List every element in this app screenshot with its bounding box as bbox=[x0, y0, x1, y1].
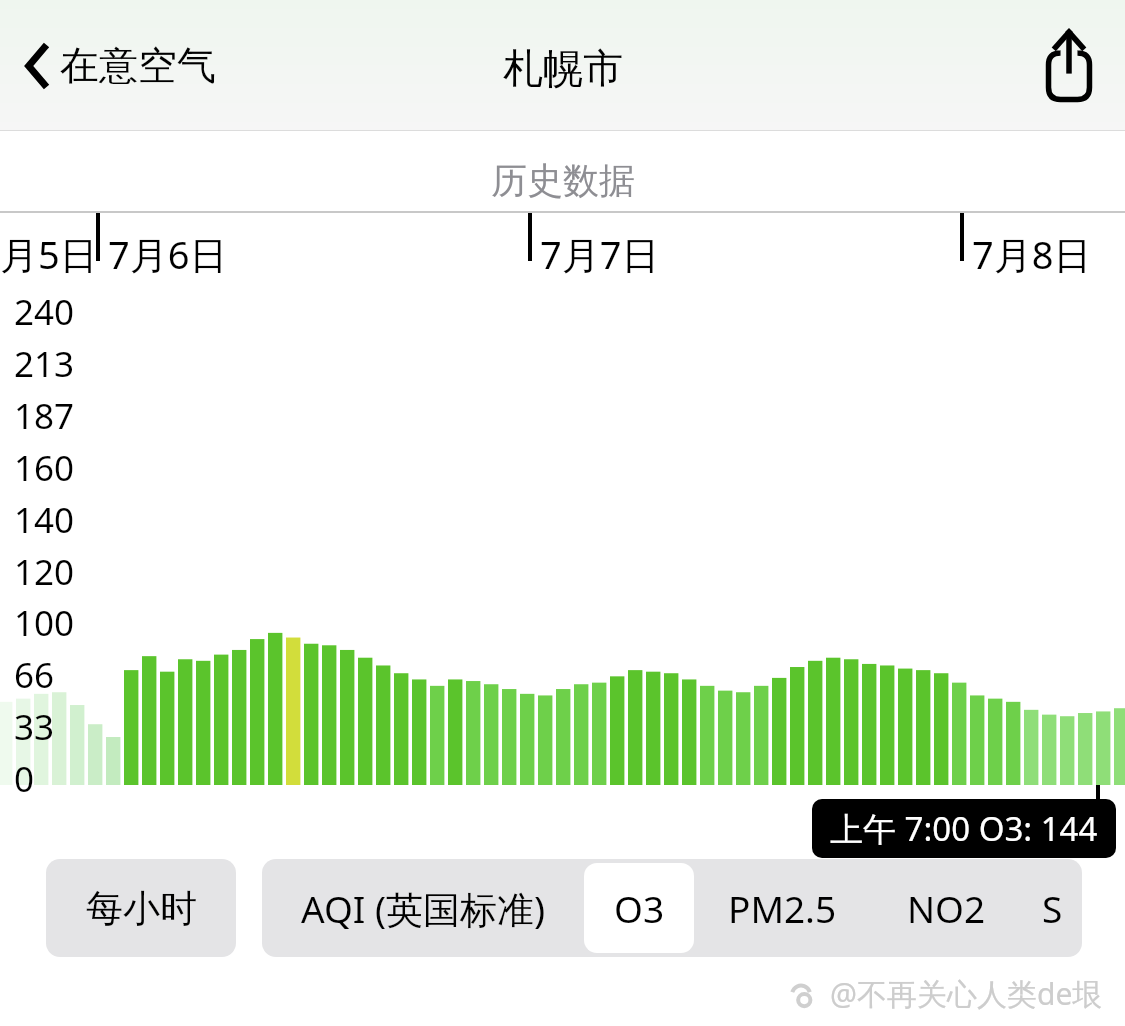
staticText: 240 bbox=[14, 288, 75, 336]
button[interactable]: O3 bbox=[584, 863, 694, 953]
staticText: 7月8日 bbox=[972, 228, 1092, 280]
staticText: PM2.5 bbox=[728, 883, 837, 933]
button[interactable]: 在意空气 bbox=[16, 35, 224, 96]
staticText: 140 bbox=[14, 496, 75, 544]
staticText: 7月6日 bbox=[108, 228, 228, 280]
staticText: 月5日 bbox=[0, 228, 98, 280]
button[interactable]: PM2.5 bbox=[694, 859, 870, 957]
staticText: 213 bbox=[14, 340, 75, 388]
staticText: 120 bbox=[14, 548, 75, 596]
staticText: 在意空气 bbox=[60, 41, 216, 90]
staticText: 160 bbox=[14, 444, 75, 492]
staticText: 上午 7:00 O3: 144 bbox=[830, 806, 1098, 851]
staticText: 历史数据 bbox=[491, 158, 635, 203]
staticText: AQI (英国标准) bbox=[301, 883, 546, 934]
button[interactable]: NO2 bbox=[870, 859, 1022, 957]
button[interactable]: Share bbox=[1037, 28, 1101, 104]
staticText: 札幌市 bbox=[503, 43, 623, 93]
staticText: O3 bbox=[614, 883, 665, 933]
staticText: @不再关心人类de垠 bbox=[830, 973, 1103, 1014]
button[interactable]: 每小时 bbox=[46, 859, 236, 957]
staticText: 100 bbox=[14, 599, 75, 647]
staticText: 每小时 bbox=[86, 885, 197, 932]
button[interactable]: S bbox=[1022, 859, 1082, 957]
staticText: 66 bbox=[14, 651, 55, 699]
staticText: 187 bbox=[14, 392, 75, 440]
staticText: NO2 bbox=[907, 883, 986, 933]
staticText: 0 bbox=[14, 755, 35, 803]
staticText: 7月7日 bbox=[540, 228, 660, 280]
staticText: S bbox=[1042, 883, 1063, 933]
button[interactable]: AQI (英国标准) bbox=[262, 859, 584, 957]
staticText: 33 bbox=[14, 703, 55, 751]
